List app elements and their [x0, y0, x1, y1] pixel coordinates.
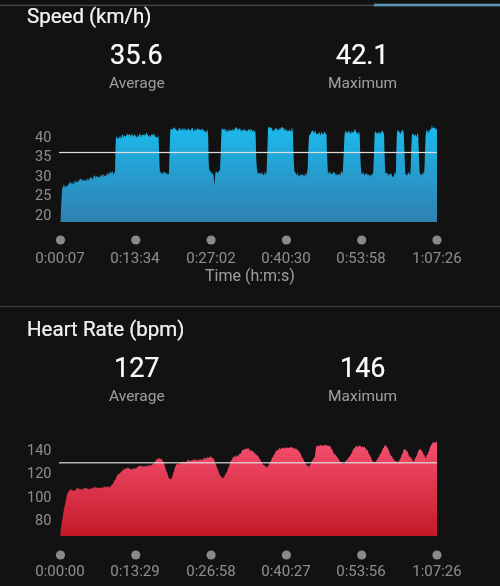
staticText: 0:53:58 — [336, 249, 386, 267]
staticText: 0:27:02 — [186, 249, 236, 267]
staticText: Time (h:m:s) — [205, 266, 295, 285]
staticText: 80 — [35, 512, 52, 529]
staticText: 140 — [27, 442, 52, 459]
staticText: 0:40:30 — [261, 249, 311, 267]
button[interactable]: Speed (km/h) — [27, 4, 152, 28]
staticText: 40 — [35, 129, 52, 146]
staticText: Maximum — [328, 74, 398, 92]
staticText: 146 — [340, 352, 386, 384]
button[interactable]: Heart Rate (bpm) — [27, 317, 185, 341]
staticText: 100 — [27, 489, 52, 506]
staticText: 1:07:26 — [412, 562, 462, 580]
staticText: 35.6 — [110, 39, 163, 71]
staticText: 1:07:26 — [412, 249, 462, 267]
staticText: Average — [109, 387, 165, 405]
staticText: 0:00:00 — [35, 562, 85, 580]
staticText: 0:13:34 — [110, 249, 160, 267]
staticText: 42.1 — [336, 39, 389, 71]
staticText: 120 — [27, 465, 52, 482]
staticText: 35 — [35, 148, 52, 165]
staticText: 0:00:07 — [35, 249, 85, 267]
staticText: Speed (km/h) — [27, 4, 152, 28]
staticText: 0:53:56 — [336, 562, 386, 580]
staticText: Heart Rate (bpm) — [27, 317, 185, 341]
staticText: 0:26:58 — [186, 562, 236, 580]
staticText: 0:13:29 — [110, 562, 160, 580]
staticText: 0:40:27 — [261, 562, 311, 580]
staticText: 30 — [35, 168, 52, 185]
staticText: 20 — [35, 207, 52, 224]
staticText: 127 — [114, 352, 160, 384]
staticText: Maximum — [328, 387, 398, 405]
staticText: 25 — [35, 187, 52, 204]
staticText: Average — [109, 74, 165, 92]
